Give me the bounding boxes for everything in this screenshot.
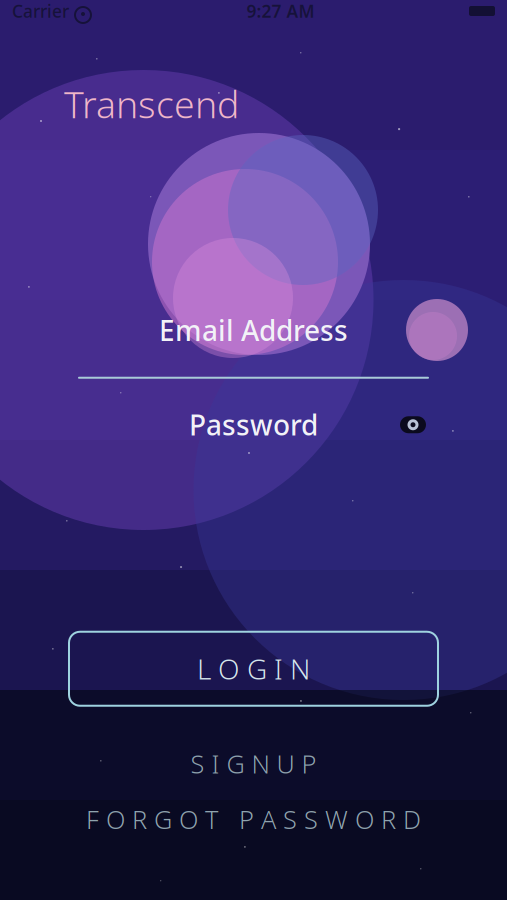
button[interactable]: S I G N U P [172, 742, 334, 785]
button[interactable]: F O R G O T P A S S W O R D [68, 797, 439, 841]
staticText: Email Address [159, 312, 348, 349]
staticText: Password [189, 406, 318, 443]
staticText: Carrier [12, 0, 69, 22]
staticText: Transcend [64, 79, 239, 129]
staticText: F O R G O T P A S S W O R D [86, 802, 421, 836]
staticText: 9:27 AM [246, 0, 314, 22]
button[interactable]: Show password [393, 409, 433, 441]
staticText: S I G N U P [190, 747, 316, 780]
button[interactable]: L O G I N [69, 632, 438, 706]
staticText: L O G I N [197, 650, 310, 687]
